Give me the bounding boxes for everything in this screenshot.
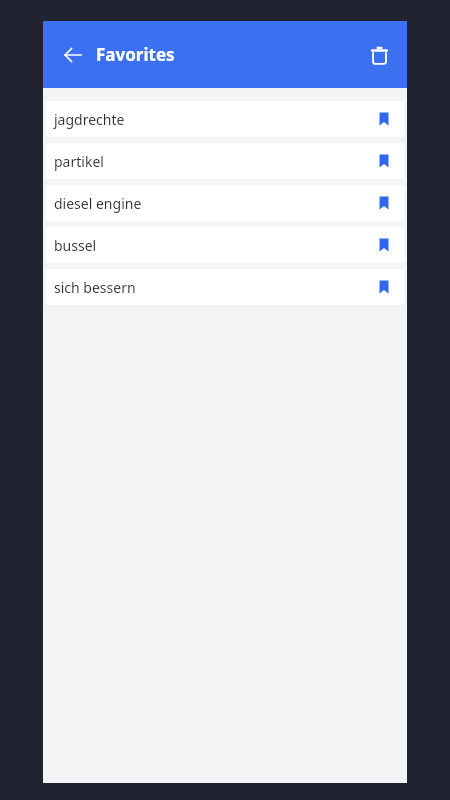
button[interactable]: Remove bookmark xyxy=(368,229,400,261)
button[interactable]: Remove bookmark xyxy=(368,271,400,303)
button[interactable]: Remove bookmark xyxy=(368,103,400,135)
staticText: Favorites xyxy=(96,43,175,66)
button[interactable]: diesel engine xyxy=(46,185,404,221)
button[interactable]: bussel xyxy=(46,227,404,263)
button[interactable]: Remove bookmark xyxy=(368,145,400,177)
staticText: bussel xyxy=(54,236,368,255)
button[interactable]: Delete all favorites xyxy=(361,37,397,73)
staticText: sich bessern xyxy=(54,278,368,297)
button[interactable]: Remove bookmark xyxy=(368,187,400,219)
staticText: partikel xyxy=(54,152,368,171)
button[interactable]: Back xyxy=(56,38,90,72)
staticText: jagdrechte xyxy=(54,110,368,129)
button[interactable]: sich bessern xyxy=(46,269,404,305)
button[interactable]: jagdrechte xyxy=(46,101,404,137)
staticText: diesel engine xyxy=(54,194,368,213)
button[interactable]: partikel xyxy=(46,143,404,179)
